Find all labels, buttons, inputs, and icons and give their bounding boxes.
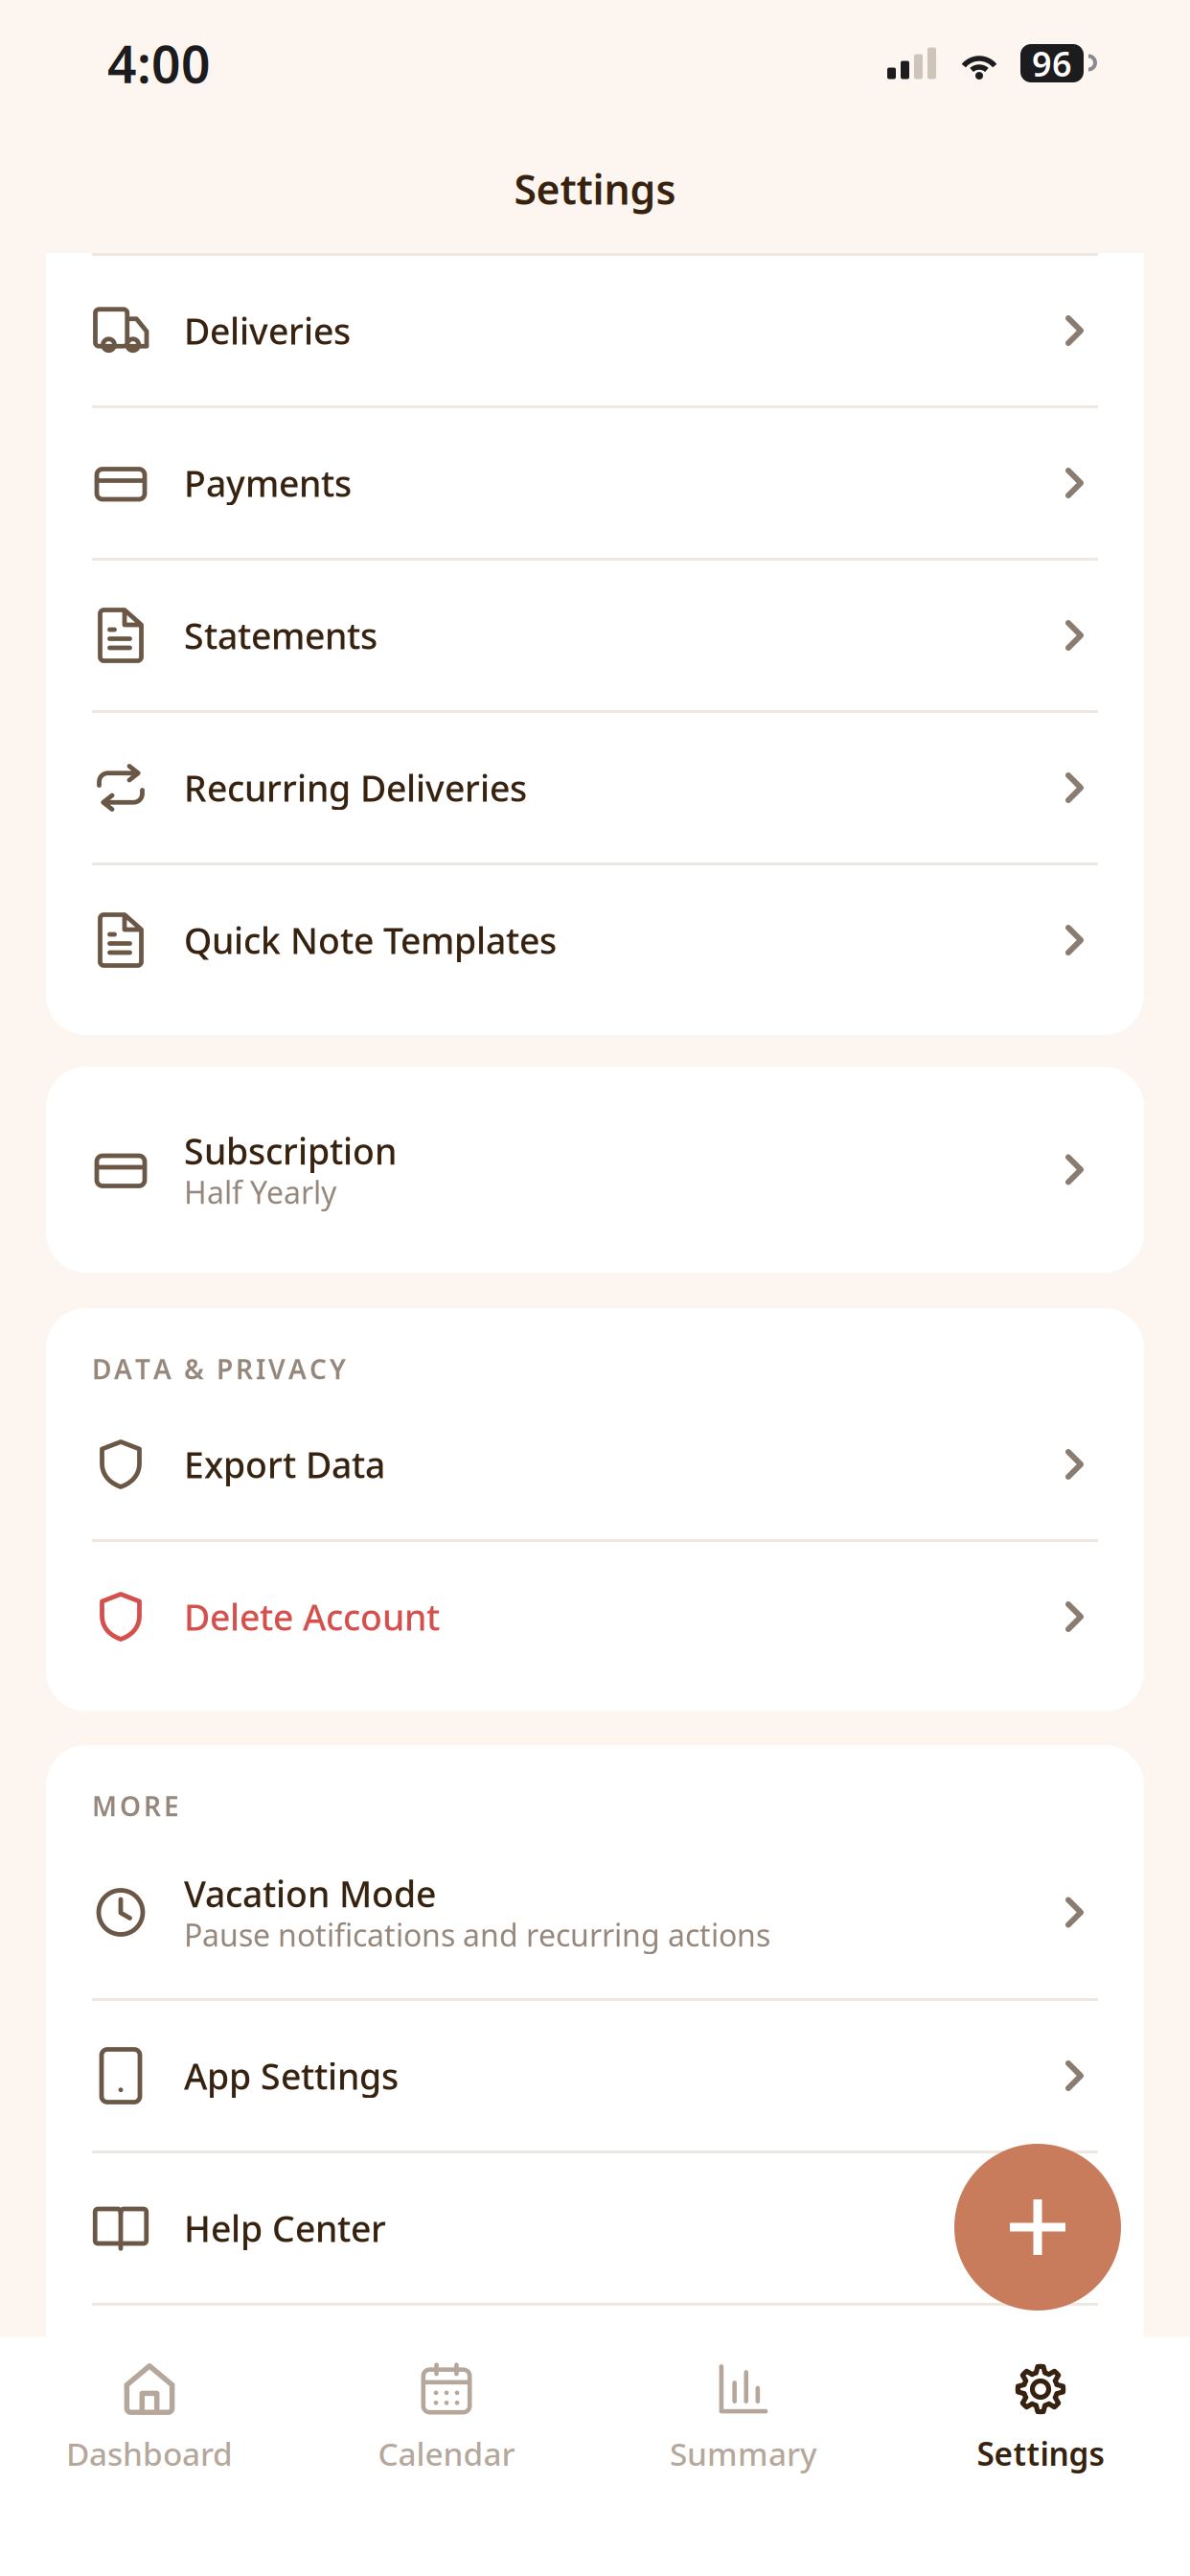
staticText: Calendar [378,2432,515,2475]
button[interactable]: Help Center [46,2153,1144,2303]
button[interactable]: App Settings [46,2001,1144,2150]
button[interactable]: Payments [46,408,1144,558]
staticText: Export Data [184,1441,385,1488]
staticText: D A T A & P R I V A C Y [92,1351,346,1387]
button[interactable]: Dashboard [1,2336,298,2576]
button[interactable]: Export Data [46,1390,1144,1539]
button[interactable]: Subscription [46,1067,1144,1273]
button[interactable]: Summary [595,2336,892,2576]
staticText: Quick Note Templates [184,916,557,964]
button[interactable]: Calendar [298,2336,595,2576]
staticText: Settings [977,2432,1104,2475]
button[interactable]: Delete Account [46,1542,1144,1691]
button[interactable]: Reports [46,103,1144,253]
button[interactable]: Vacation Mode [46,1827,1144,1998]
staticText: Subscription [184,1127,397,1175]
staticText: Help Center [184,2204,386,2252]
staticText: App Settings [184,2052,399,2100]
staticText: 96 [1032,40,1072,86]
staticText: Vacation Mode [184,1870,436,1917]
staticText: Delete Account [184,1593,440,1640]
staticText: Statements [184,612,378,659]
staticText: Dashboard [66,2432,233,2475]
staticText: Pause notifications and recurring action… [184,1914,770,1955]
staticText: Summary [670,2432,817,2475]
staticText: Payments [184,459,352,507]
staticText: Deliveries [184,307,351,354]
button[interactable]: Statements [46,561,1144,710]
button[interactable]: Recurring Deliveries [46,713,1144,862]
staticText: Settings [514,162,676,216]
staticText: Recurring Deliveries [184,764,527,812]
button[interactable]: Settings [892,2336,1189,2576]
button[interactable]: Quick Note Templates [46,865,1144,1015]
button[interactable]: Deliveries [46,256,1144,405]
staticText: M O R E [92,1788,179,1824]
staticText: Half Yearly [184,1172,336,1212]
button[interactable]: Add [954,2144,1121,2311]
staticText: 4:00 [107,29,211,97]
